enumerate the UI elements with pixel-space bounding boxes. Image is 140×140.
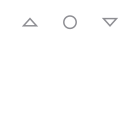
button[interactable]: Up (10, 9, 50, 35)
button[interactable]: Down (90, 9, 130, 35)
button[interactable]: Select (50, 9, 90, 35)
